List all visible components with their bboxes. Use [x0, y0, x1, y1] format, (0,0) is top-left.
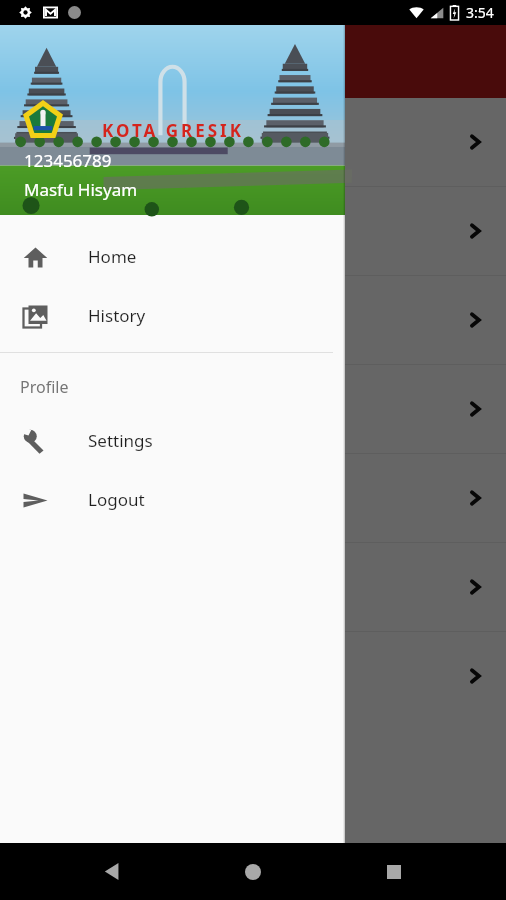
- button[interactable]: Recent apps: [365, 843, 423, 900]
- button[interactable]: Peta Kota: [0, 454, 506, 542]
- button[interactable]: Home: [224, 843, 282, 900]
- button[interactable]: [0, 25, 506, 843]
- button[interactable]: Back: [83, 843, 141, 900]
- staticText: Profile: [20, 376, 69, 398]
- staticText: Informasi: [20, 307, 464, 333]
- button[interactable]: Perpanjangan: [0, 187, 506, 275]
- button[interactable]: History: [0, 286, 345, 345]
- staticText: Pengaduan: [20, 396, 464, 422]
- button[interactable]: Settings: [0, 411, 345, 470]
- staticText: Masfu Hisyam: [24, 178, 138, 201]
- staticText: Bantuan: [20, 663, 464, 689]
- staticText: Profil Kota: [20, 574, 464, 600]
- staticText: 3:54: [466, 3, 494, 22]
- staticText: Pendaftaran: [20, 129, 464, 155]
- button[interactable]: Home: [0, 227, 345, 286]
- staticText: Settings: [88, 429, 153, 452]
- button[interactable]: Bantuan: [0, 632, 506, 720]
- staticText: Logout: [88, 488, 145, 511]
- staticText: History: [88, 304, 146, 327]
- button[interactable]: Informasi: [0, 276, 506, 364]
- button[interactable]: Pengaduan: [0, 365, 506, 453]
- button[interactable]: Pendaftaran: [0, 98, 506, 186]
- staticText: KOTA GRESIK: [102, 119, 244, 142]
- staticText: Peta Kota: [20, 485, 464, 511]
- button[interactable]: Profil Kota: [0, 543, 506, 631]
- staticText: 123456789: [24, 149, 112, 172]
- button[interactable]: Logout: [0, 470, 345, 529]
- staticText: Perpanjangan: [20, 218, 464, 244]
- staticText: Home: [88, 245, 137, 268]
